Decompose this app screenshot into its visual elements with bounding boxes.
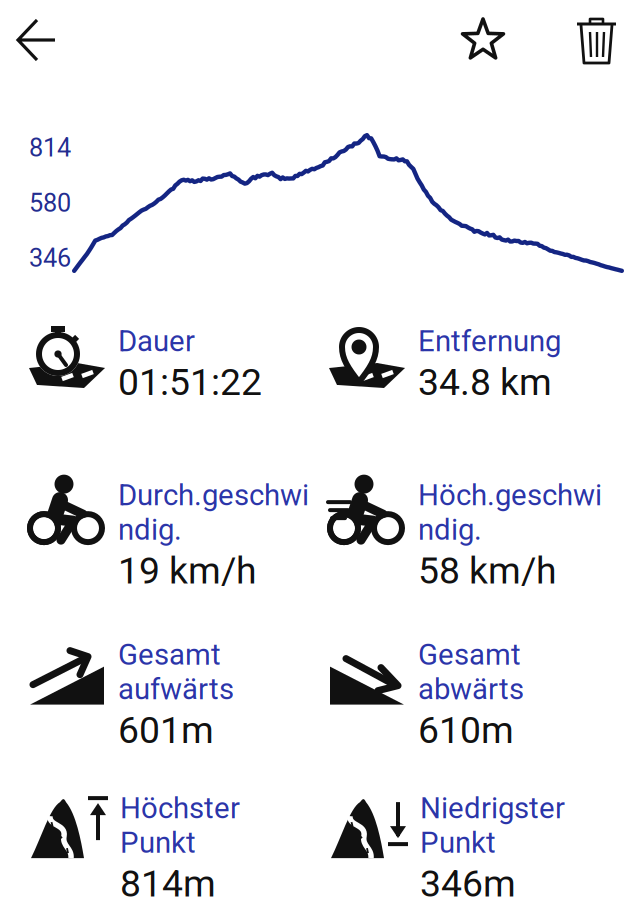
staticText: 58 km/h <box>418 549 557 593</box>
staticText: 814 <box>29 133 71 163</box>
staticText: 601m <box>118 708 214 752</box>
staticText: 346m <box>420 862 516 906</box>
button[interactable]: Back <box>0 3 74 79</box>
button[interactable]: Favorite <box>438 3 530 79</box>
staticText: Entfernung <box>418 324 561 358</box>
staticText: Höch.geschwi ndig. <box>418 478 602 547</box>
staticText: Höchster Punkt <box>120 791 240 860</box>
staticText: 580 <box>29 188 71 218</box>
staticText: 19 km/h <box>118 549 257 593</box>
staticText: Niedrigster Punkt <box>420 791 565 860</box>
staticText: Gesamt aufwärts <box>118 638 234 706</box>
staticText: 01:51:22 <box>118 360 262 404</box>
staticText: Dauer <box>118 324 195 358</box>
staticText: Gesamt abwärts <box>418 638 524 706</box>
staticText: 814m <box>120 862 216 906</box>
staticText: 346 <box>29 243 71 273</box>
staticText: 610m <box>418 708 514 752</box>
staticText: 34.8 km <box>418 360 552 404</box>
button[interactable]: Delete <box>554 3 640 79</box>
staticText: Durch.geschwi ndig. <box>118 478 309 547</box>
